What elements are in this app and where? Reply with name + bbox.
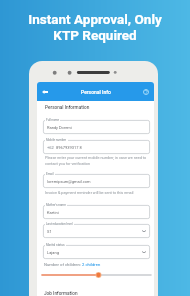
staticText: Last education level bbox=[46, 222, 73, 226]
staticText: +62 bbox=[47, 145, 54, 150]
staticText: 2 children bbox=[82, 262, 101, 267]
button[interactable]: Full name bbox=[43, 120, 150, 134]
button[interactable]: Mobile number bbox=[43, 140, 150, 154]
button[interactable]: Email bbox=[43, 174, 150, 188]
button[interactable]: Back bbox=[40, 87, 49, 96]
staticText: Invoice & payment reminder will be sent … bbox=[45, 190, 154, 194]
staticText: Number of children: bbox=[44, 262, 82, 267]
staticText: Personal Info bbox=[81, 89, 111, 95]
staticText: Please enter your current mobile number,… bbox=[45, 155, 154, 166]
staticText: Job Information bbox=[44, 291, 78, 296]
staticText: Kartini bbox=[47, 210, 59, 215]
staticText: S1 bbox=[47, 229, 52, 234]
staticText: Instant Approval, Only bbox=[28, 11, 162, 27]
button[interactable]: Help bbox=[141, 87, 150, 96]
staticText: 8967939317 8 bbox=[56, 145, 82, 150]
staticText: Personal Information bbox=[45, 105, 90, 111]
staticText: Mother's name bbox=[46, 203, 66, 207]
staticText: Full name bbox=[46, 118, 59, 122]
button[interactable]: Number of children slider bbox=[41, 271, 152, 279]
staticText: Randy Doremi bbox=[47, 125, 72, 130]
button[interactable]: Marital status bbox=[43, 245, 150, 259]
staticText: Mobile number bbox=[46, 138, 67, 142]
staticText: Email bbox=[46, 172, 54, 176]
staticText: loremipsum@gmail.com bbox=[47, 179, 91, 184]
staticText: KTP Required bbox=[53, 27, 137, 43]
button[interactable]: Personal Info bbox=[37, 82, 154, 101]
staticText: Marital status bbox=[46, 243, 65, 247]
button[interactable]: Mother's name bbox=[43, 205, 150, 219]
button[interactable]: Last education level bbox=[43, 224, 150, 238]
staticText: Lajang bbox=[47, 250, 59, 255]
